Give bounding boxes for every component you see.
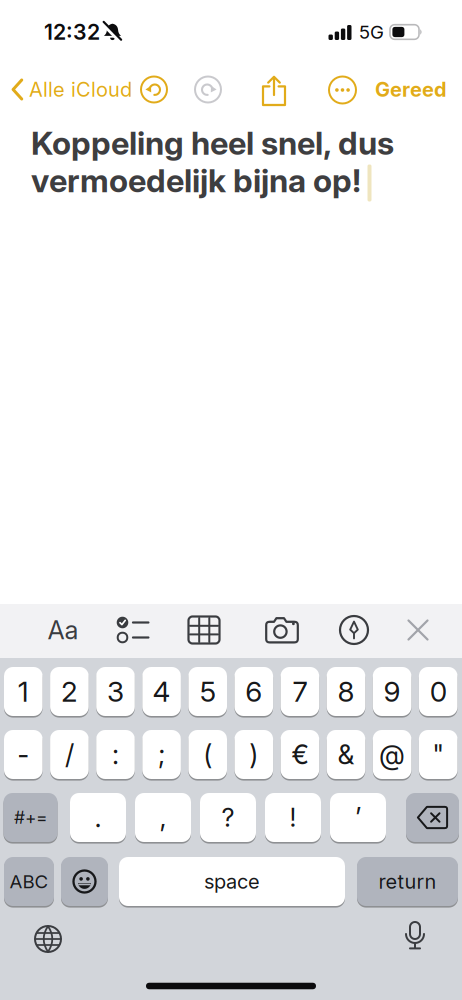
button[interactable]: Gereed: [375, 78, 447, 101]
staticText: 5G: [359, 21, 384, 43]
button[interactable]: -: [4, 730, 43, 779]
button[interactable]: !: [265, 793, 321, 842]
button[interactable]: 0: [419, 667, 457, 716]
button[interactable]: @: [373, 730, 411, 779]
staticText: 12:32: [44, 19, 100, 45]
staticText: ): [249, 739, 258, 770]
button[interactable]: 7: [281, 667, 319, 716]
staticText: Aa: [47, 615, 78, 645]
button[interactable]: Undo: [139, 74, 169, 104]
button[interactable]: 4: [142, 667, 181, 716]
staticText: space: [204, 870, 260, 893]
button[interactable]: €: [281, 730, 319, 779]
button[interactable]: 3: [96, 667, 135, 716]
staticText: return: [378, 870, 436, 893]
button[interactable]: Dismiss keyboard: [396, 608, 440, 652]
button[interactable]: ?: [200, 793, 256, 842]
button[interactable]: Alle iCloud: [0, 0, 134, 112]
staticText: €: [291, 739, 308, 770]
button[interactable]: &: [327, 730, 365, 779]
button[interactable]: Next keyboard: [34, 925, 62, 953]
staticText: !: [289, 803, 296, 832]
staticText: 5: [200, 675, 216, 708]
staticText: 9: [384, 675, 401, 708]
staticText: 1: [18, 675, 29, 708]
staticText: ,: [159, 802, 166, 833]
staticText: 0: [430, 675, 447, 708]
button[interactable]: 5: [188, 667, 227, 716]
staticText: (: [203, 739, 212, 770]
staticText: 4: [153, 675, 171, 708]
button[interactable]: Delete: [406, 793, 459, 842]
button[interactable]: .: [70, 793, 126, 842]
staticText: @: [379, 739, 405, 770]
staticText: 2: [61, 675, 78, 708]
button[interactable]: Format: [38, 608, 88, 652]
staticText: ?: [221, 803, 234, 832]
staticText: -: [17, 739, 29, 770]
staticText: ;: [158, 739, 165, 770]
staticText: #+=: [14, 807, 47, 828]
button[interactable]: 2: [50, 667, 89, 716]
staticText: 6: [245, 675, 262, 708]
staticText: :: [112, 739, 119, 770]
button[interactable]: Emoji: [61, 857, 108, 906]
button[interactable]: 6: [234, 667, 273, 716]
button[interactable]: 1: [4, 667, 43, 716]
staticText: /: [65, 739, 74, 770]
staticText: 8: [337, 675, 354, 708]
button[interactable]: 9: [373, 667, 411, 716]
button[interactable]: ): [234, 730, 273, 779]
button[interactable]: Table: [179, 608, 229, 652]
button[interactable]: Camera: [257, 608, 307, 652]
button[interactable]: #+=: [3, 793, 57, 842]
button[interactable]: ’: [330, 793, 386, 842]
button[interactable]: More: [327, 75, 357, 105]
staticText: 7: [292, 675, 307, 708]
staticText: ": [432, 739, 444, 770]
button[interactable]: /: [50, 730, 89, 779]
button[interactable]: 8: [327, 667, 365, 716]
staticText: Alle iCloud: [29, 78, 132, 101]
button[interactable]: ,: [135, 793, 191, 842]
button[interactable]: Share: [259, 75, 289, 107]
button[interactable]: :: [96, 730, 135, 779]
button[interactable]: return: [357, 857, 458, 906]
button[interactable]: ABC: [4, 857, 54, 906]
button[interactable]: Dictation: [403, 921, 427, 953]
staticText: Gereed: [375, 78, 447, 101]
button[interactable]: Markup: [329, 608, 379, 652]
staticText: &: [337, 739, 354, 770]
staticText: ’: [355, 802, 361, 833]
staticText: 3: [107, 675, 124, 708]
staticText: ABC: [9, 870, 48, 892]
button[interactable]: (: [188, 730, 227, 779]
button[interactable]: space: [119, 857, 345, 906]
button[interactable]: Redo: [193, 74, 223, 104]
staticText: Koppeling heel snel, dus: [31, 124, 394, 162]
button[interactable]: Checklist: [108, 608, 158, 652]
staticText: vermoedelijk bijna op!: [31, 162, 361, 199]
staticText: .: [94, 802, 101, 833]
button[interactable]: ": [419, 730, 457, 779]
button[interactable]: ;: [142, 730, 181, 779]
